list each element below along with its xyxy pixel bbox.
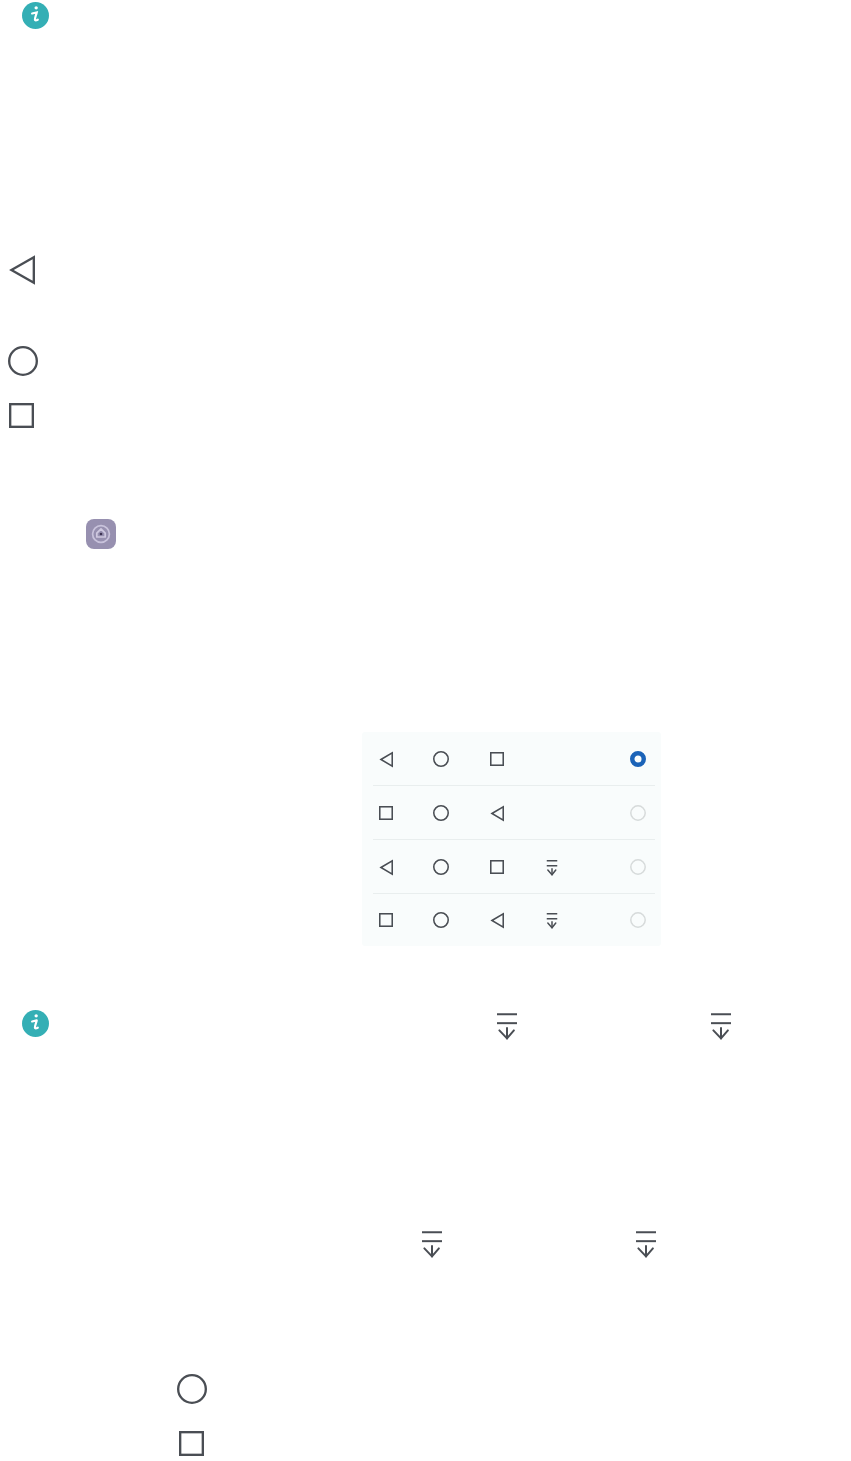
button[interactable]: Information: [22, 2, 49, 29]
other: Notification panel key: [635, 1231, 657, 1257]
other: Notification panel key: [710, 1013, 732, 1039]
other: Notification panel key: [496, 1013, 518, 1039]
other: Notification panel key: [421, 1231, 443, 1257]
other: Recents key: [179, 1431, 204, 1456]
button[interactable]: Back, Home, Recents, Notification panel: [362, 840, 661, 894]
button[interactable]: Information: [22, 1010, 49, 1037]
button[interactable]: App shortcut: [86, 519, 116, 549]
button[interactable]: Recents, Home, Back: [362, 786, 661, 840]
button[interactable]: Back, Home, Recents: [362, 732, 661, 786]
other: Home key: [177, 1374, 207, 1404]
button[interactable]: Recents, Home, Back, Notification panel: [362, 894, 661, 946]
